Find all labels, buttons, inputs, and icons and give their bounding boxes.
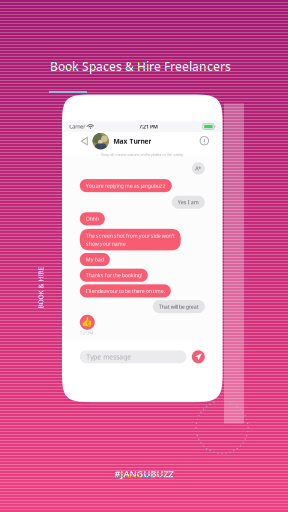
staticText: Thanks for the booking! (86, 272, 142, 279)
button[interactable]: Conversation info (64, 96, 78, 110)
staticText: Yes I am (178, 199, 199, 206)
staticText: I'll endeavour to be there on time. (86, 287, 165, 294)
staticText: That will be great (159, 303, 199, 310)
staticText: 7:21 PM (80, 330, 94, 335)
staticText: show your name (86, 240, 126, 247)
staticText: Carrier (69, 123, 85, 130)
staticText: Ohhh (86, 215, 99, 222)
staticText: A* (195, 165, 201, 172)
staticText: My bad (86, 256, 104, 263)
staticText: You are replying me as jangubuzz (86, 182, 166, 189)
button[interactable]: Send (192, 350, 205, 363)
staticText: 👍 (81, 317, 93, 328)
staticText: The screen shot from your side won't (86, 232, 175, 239)
staticText: Book Spaces & Hire Freelancers (50, 58, 231, 74)
staticText: Keep all conversations on the platform f… (101, 152, 183, 157)
button[interactable]: Back (64, 96, 78, 110)
staticText: Type message (86, 352, 131, 361)
staticText: Max Turner (113, 137, 151, 146)
staticText: #JANGUBUZZ (114, 467, 173, 480)
staticText: BOOK & HIRE (20, 283, 62, 292)
button[interactable]: Max Turner (64, 96, 123, 113)
staticText: 7:21 PM (139, 123, 158, 130)
